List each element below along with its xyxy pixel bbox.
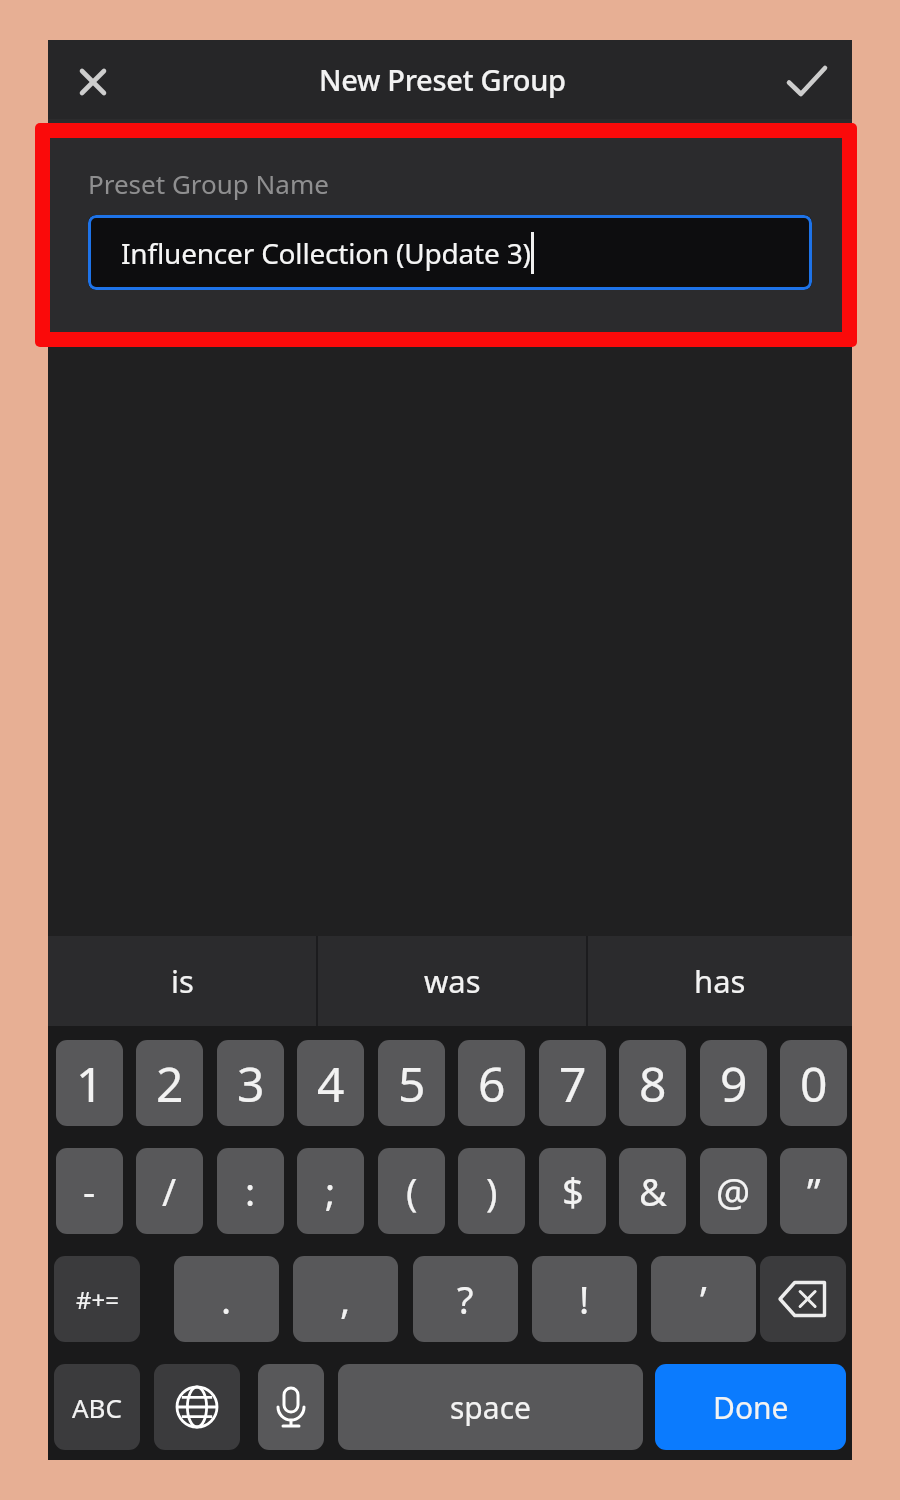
staticText: 0 — [800, 1051, 828, 1116]
staticText: 6 — [478, 1051, 506, 1116]
button[interactable]: has — [588, 936, 852, 1026]
staticText: / — [162, 1165, 177, 1217]
staticText: 9 — [720, 1051, 748, 1116]
staticText: 1 — [76, 1051, 104, 1116]
button[interactable]: 9 — [700, 1040, 767, 1126]
staticText: 5 — [398, 1051, 426, 1116]
staticText: ” — [807, 1165, 821, 1217]
staticText: 7 — [559, 1051, 587, 1116]
staticText: #+= — [76, 1283, 119, 1316]
staticText: Done — [713, 1387, 789, 1428]
button[interactable]: ’ — [651, 1256, 756, 1342]
staticText: has — [694, 960, 746, 1002]
staticText: ( — [406, 1165, 418, 1217]
button[interactable] — [783, 57, 831, 105]
button[interactable]: was — [318, 936, 586, 1026]
staticText: ) — [486, 1165, 498, 1217]
button[interactable]: : — [217, 1148, 284, 1234]
button[interactable]: 2 — [136, 1040, 203, 1126]
button[interactable]: #+= — [54, 1256, 140, 1342]
staticText: 2 — [156, 1051, 184, 1116]
staticText: ’ — [700, 1273, 707, 1325]
staticText: New Preset Group — [319, 60, 566, 99]
staticText: ! — [579, 1273, 590, 1325]
button[interactable]: 5 — [378, 1040, 445, 1126]
button[interactable]: ABC — [54, 1364, 140, 1450]
button[interactable]: Done — [655, 1364, 846, 1450]
button[interactable]: - — [56, 1148, 123, 1234]
button[interactable] — [258, 1364, 324, 1450]
button[interactable]: space — [338, 1364, 643, 1450]
staticText: @ — [716, 1165, 751, 1217]
button[interactable]: & — [619, 1148, 686, 1234]
button[interactable]: ? — [413, 1256, 518, 1342]
button[interactable]: 7 — [539, 1040, 606, 1126]
button[interactable]: 4 — [297, 1040, 364, 1126]
staticText: ? — [457, 1273, 474, 1325]
staticText: & — [639, 1165, 667, 1217]
button[interactable]: / — [136, 1148, 203, 1234]
staticText: : — [245, 1165, 256, 1217]
button[interactable]: @ — [700, 1148, 767, 1234]
button[interactable]: ) — [458, 1148, 525, 1234]
staticText: 3 — [237, 1051, 265, 1116]
button[interactable]: , — [293, 1256, 398, 1342]
staticText: , — [340, 1273, 351, 1325]
button[interactable]: ( — [378, 1148, 445, 1234]
staticText: $ — [562, 1165, 584, 1217]
button[interactable]: 3 — [217, 1040, 284, 1126]
button[interactable]: . — [174, 1256, 279, 1342]
staticText: ABC — [72, 1390, 122, 1425]
button[interactable]: is — [48, 936, 316, 1026]
button[interactable]: 0 — [780, 1040, 847, 1126]
button[interactable]: ! — [532, 1256, 637, 1342]
button[interactable]: 8 — [619, 1040, 686, 1126]
button[interactable]: ” — [780, 1148, 847, 1234]
staticText: Preset Group Name — [88, 166, 329, 201]
button[interactable]: Influencer Collection (Update 3) — [88, 215, 812, 290]
staticText: 4 — [317, 1051, 345, 1116]
button[interactable]: ; — [297, 1148, 364, 1234]
button[interactable]: $ — [539, 1148, 606, 1234]
staticText: Influencer Collection (Update 3) — [121, 234, 531, 272]
button[interactable]: 6 — [458, 1040, 525, 1126]
staticText: 8 — [639, 1051, 667, 1116]
staticText: is — [171, 960, 194, 1002]
button[interactable] — [69, 58, 117, 106]
staticText: - — [83, 1165, 96, 1217]
button[interactable] — [154, 1364, 240, 1450]
staticText: ; — [325, 1165, 336, 1217]
button[interactable]: 1 — [56, 1040, 123, 1126]
staticText: space — [450, 1387, 531, 1428]
staticText: . — [221, 1273, 232, 1325]
button[interactable] — [760, 1256, 846, 1342]
staticText: was — [424, 960, 481, 1002]
